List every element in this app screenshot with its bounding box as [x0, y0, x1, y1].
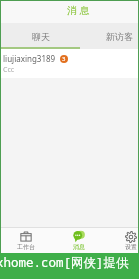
other: 设置 [125, 231, 137, 243]
button[interactable]: 设置 [104, 228, 139, 253]
staticText: xhome.com[网侠]提供 [0, 254, 129, 271]
staticText: 工作台 [17, 243, 35, 251]
staticText: 新访客 [106, 31, 133, 42]
button[interactable]: 工作台 [0, 228, 52, 253]
button[interactable]: 消息 [52, 228, 105, 253]
button[interactable]: 聊天 [1, 23, 80, 49]
staticText: Ccc [3, 65, 15, 75]
staticText: 3 [62, 55, 66, 63]
other: 工作台 [20, 231, 32, 243]
other: 消息 [72, 230, 85, 243]
button[interactable]: 新访客 [80, 23, 139, 49]
staticText: 设置 [125, 243, 137, 251]
staticText: liujiaxing3189 [3, 53, 56, 64]
staticText: 消 息 [67, 3, 90, 17]
staticText: 聊天 [32, 31, 50, 42]
button[interactable]: liujiaxing3189 [1, 49, 138, 78]
staticText: 消息 [73, 243, 85, 251]
